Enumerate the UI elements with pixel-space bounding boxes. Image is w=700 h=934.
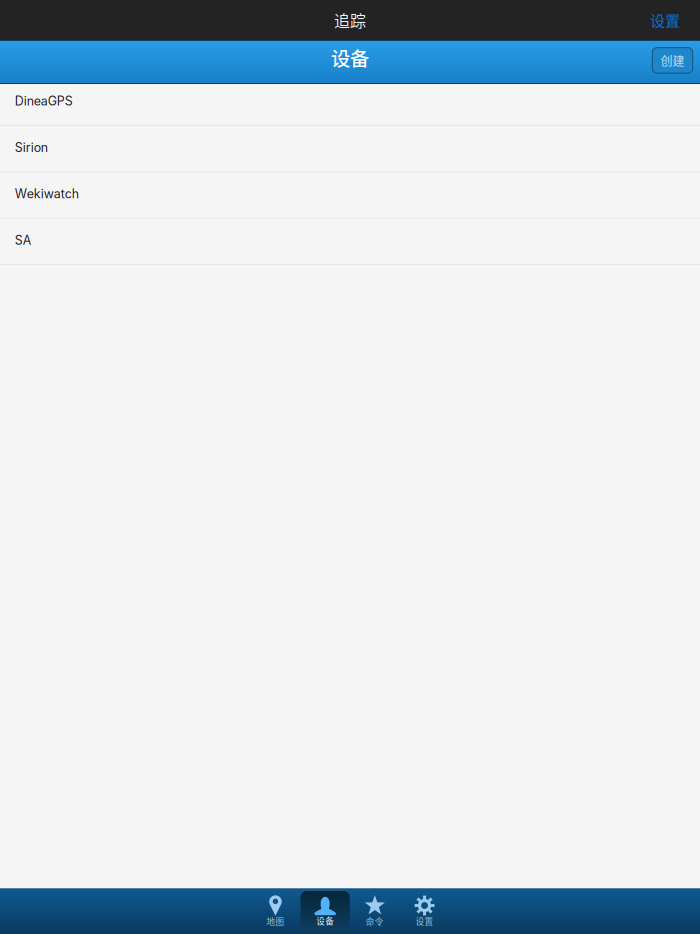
button[interactable]: 命令 (350, 891, 399, 931)
button[interactable]: SA (0, 219, 700, 265)
staticText: Wekiwatch (15, 186, 79, 201)
button[interactable]: 设置 (400, 891, 449, 931)
staticText: 设置 (416, 915, 434, 927)
button[interactable]: 创建 (652, 48, 693, 76)
button[interactable]: Wekiwatch (0, 172, 700, 219)
staticText: Sirion (15, 140, 48, 155)
button[interactable]: 地图 (251, 891, 300, 931)
staticText: 设备 (331, 43, 369, 71)
button[interactable]: 设备 (300, 891, 350, 931)
staticText: DineaGPS (15, 94, 73, 109)
button[interactable]: DineaGPS (0, 84, 700, 126)
button[interactable]: Sirion (0, 126, 700, 172)
staticText: SA (15, 233, 32, 248)
button[interactable]: 设置 (650, 0, 700, 40)
staticText: 地图 (266, 915, 284, 927)
staticText: 追踪 (334, 8, 366, 32)
staticText: 命令 (366, 915, 384, 928)
staticText: 设置 (650, 9, 680, 31)
staticText: 设备 (316, 914, 334, 927)
staticText: 创建 (660, 52, 684, 69)
